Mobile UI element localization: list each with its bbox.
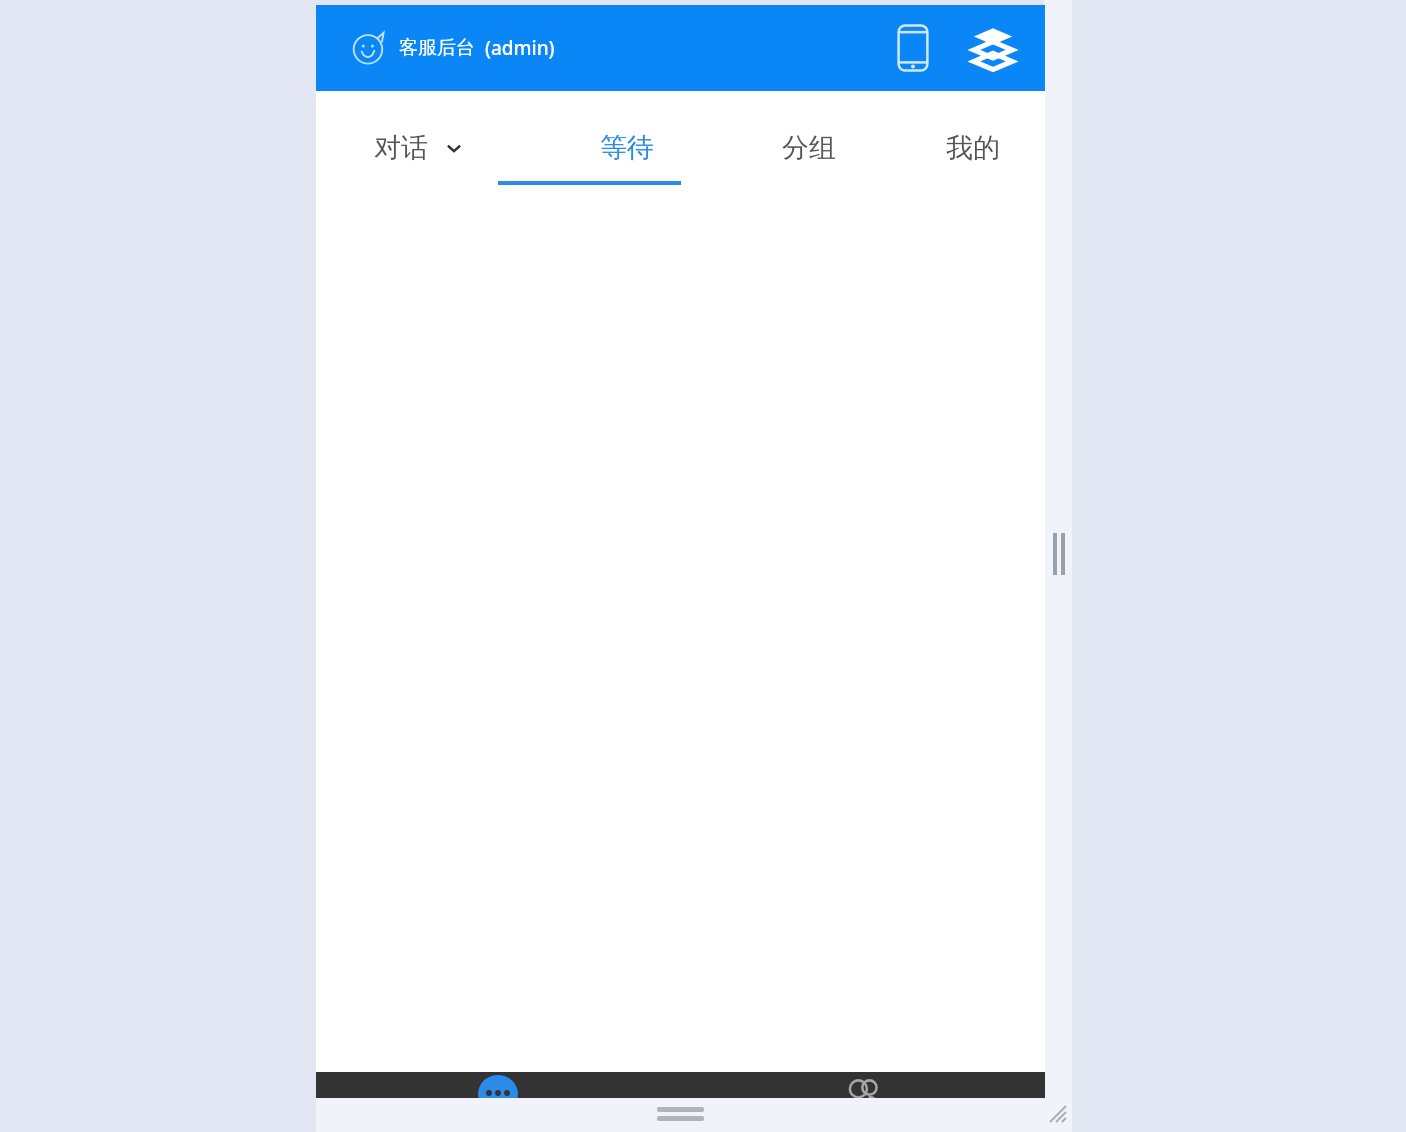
staticText: 等待 [600,131,654,165]
button[interactable]: 用户 [680,1072,1045,1132]
button[interactable]: 分组 [718,91,900,204]
button[interactable]: 对话 [374,91,519,204]
staticText: 我的 [946,131,1000,165]
button[interactable]: Layers [963,18,1023,78]
button[interactable]: Mobile preview [883,18,943,78]
button[interactable]: 等待 [536,91,718,204]
staticText: (admin) [485,35,555,61]
staticText: 分组 [782,131,836,165]
button[interactable]: 客服后台 [352,31,555,65]
staticText: 客服后台 [399,36,475,60]
button[interactable]: 对话 [316,1072,680,1132]
button[interactable]: 我的 [900,91,1045,204]
staticText: 对话 [374,131,428,165]
